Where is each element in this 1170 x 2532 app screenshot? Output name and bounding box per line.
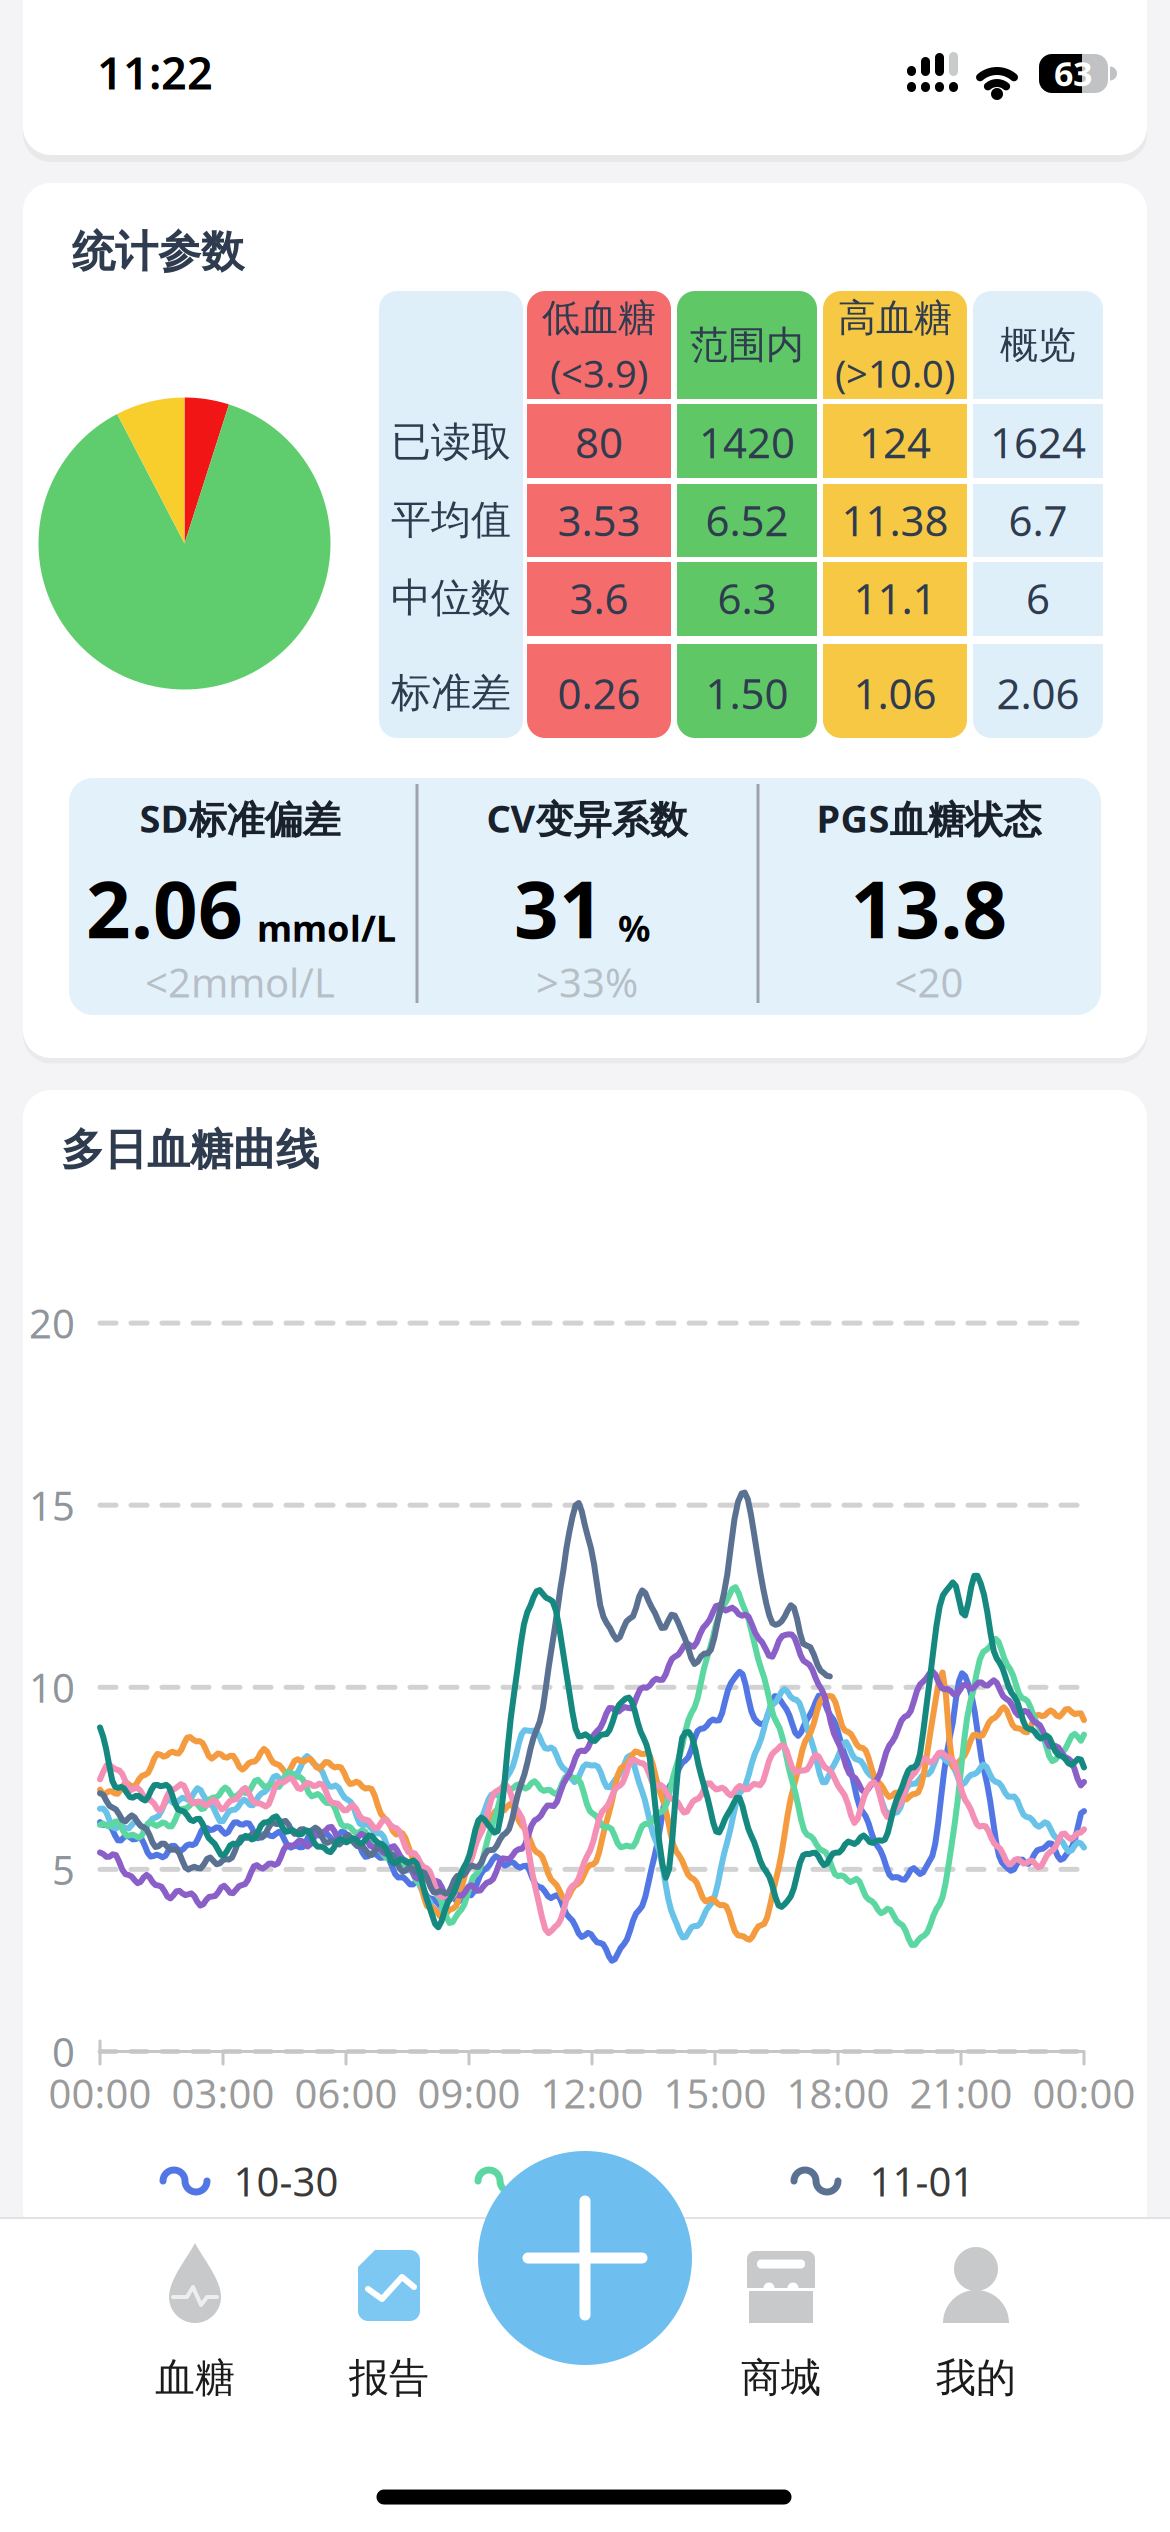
staticText: 6 bbox=[1026, 570, 1050, 626]
staticText: >33% bbox=[536, 955, 638, 1008]
staticText: 6.7 bbox=[1008, 492, 1067, 548]
staticText: PGS血糖状态 bbox=[816, 793, 1041, 843]
staticText: 我的 bbox=[936, 2353, 1016, 2402]
button[interactable]: 添加记录 bbox=[478, 2151, 692, 2365]
staticText: 1420 bbox=[699, 414, 795, 470]
staticText: 63 bbox=[1054, 50, 1092, 96]
staticText: 血糖 bbox=[155, 2353, 235, 2402]
staticText: 21:00 bbox=[909, 2066, 1012, 2119]
staticText: 3.6 bbox=[569, 570, 628, 626]
staticText: 已读取 bbox=[391, 417, 511, 466]
staticText: 31 bbox=[514, 856, 604, 960]
staticText: 06:00 bbox=[294, 2066, 397, 2119]
staticText: 80 bbox=[575, 414, 623, 470]
button[interactable]: 我的 bbox=[896, 2236, 1056, 2416]
staticText: 12:00 bbox=[540, 2066, 643, 2119]
staticText: <2mmol/L bbox=[145, 955, 335, 1008]
staticText: (>10.0) bbox=[835, 348, 955, 398]
staticText: % bbox=[618, 904, 650, 952]
staticText: 15 bbox=[29, 1479, 75, 1532]
staticText: 2.06 bbox=[86, 856, 243, 960]
staticText: 1624 bbox=[990, 414, 1086, 470]
staticText: 3.53 bbox=[557, 492, 640, 548]
staticText: 10 bbox=[29, 1661, 75, 1714]
staticText: 概览 bbox=[1000, 322, 1076, 368]
staticText: 报告 bbox=[349, 2353, 429, 2402]
staticText: 6.3 bbox=[717, 570, 776, 626]
staticText: 中位数 bbox=[391, 573, 511, 622]
staticText: 统计参数 bbox=[72, 226, 244, 278]
staticText: 03:00 bbox=[171, 2066, 274, 2119]
staticText: 0.26 bbox=[557, 665, 640, 721]
staticText: 20 bbox=[29, 1296, 75, 1350]
button[interactable]: 血糖 bbox=[115, 2236, 275, 2416]
staticText: 11-01 bbox=[869, 2154, 974, 2207]
staticText: 低血糖 bbox=[542, 295, 656, 341]
staticText: 0 bbox=[52, 2025, 75, 2078]
staticText: 11.38 bbox=[841, 492, 948, 548]
staticText: 5 bbox=[52, 1843, 75, 1896]
button[interactable]: 报告 bbox=[309, 2236, 469, 2416]
staticText: 6.52 bbox=[705, 492, 788, 548]
staticText: 高血糖 bbox=[838, 295, 952, 341]
staticText: 11:22 bbox=[97, 42, 213, 102]
staticText: 18:00 bbox=[786, 2066, 889, 2119]
staticText: CV变异系数 bbox=[486, 793, 687, 843]
staticText: 标准差 bbox=[391, 668, 511, 717]
staticText: 124 bbox=[859, 414, 931, 470]
staticText: 13.8 bbox=[850, 856, 1007, 960]
staticText: 商城 bbox=[741, 2353, 821, 2402]
staticText: 2.06 bbox=[996, 665, 1079, 721]
staticText: 11.1 bbox=[853, 570, 936, 626]
staticText: 15:00 bbox=[663, 2066, 766, 2119]
staticText: 00:00 bbox=[48, 2066, 151, 2119]
button[interactable]: 商城 bbox=[701, 2236, 861, 2416]
staticText: 09:00 bbox=[417, 2066, 520, 2119]
staticText: 1.06 bbox=[853, 665, 936, 721]
staticText: 范围内 bbox=[690, 322, 804, 368]
staticText: <20 bbox=[894, 955, 963, 1008]
staticText: 多日血糖曲线 bbox=[61, 1124, 319, 1176]
staticText: mmol/L bbox=[257, 904, 396, 952]
staticText: 10-30 bbox=[233, 2154, 338, 2207]
staticText: (<3.9) bbox=[550, 348, 648, 398]
staticText: SD标准偏差 bbox=[139, 793, 340, 843]
staticText: 00:00 bbox=[1032, 2066, 1135, 2119]
staticText: 平均值 bbox=[391, 495, 511, 544]
staticText: 1.50 bbox=[705, 665, 788, 721]
